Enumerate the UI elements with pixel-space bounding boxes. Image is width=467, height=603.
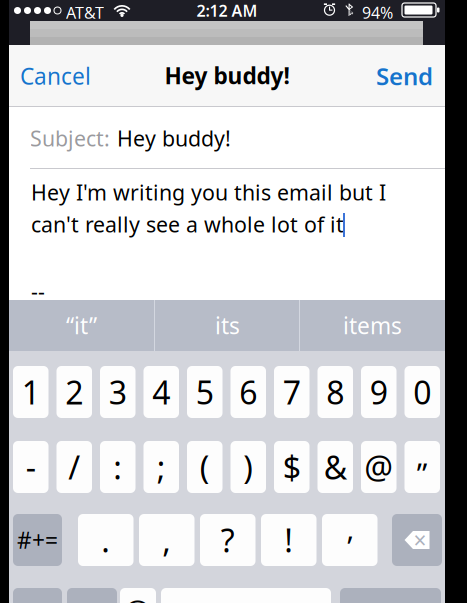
button[interactable]: Delete [392,514,442,566]
staticText: ? [221,519,235,561]
staticText: ( [200,446,210,488]
staticText: 5 [196,371,214,413]
button[interactable]: ( [187,441,222,493]
staticText: Send [376,60,433,92]
staticText: 9 [370,371,388,413]
button[interactable]: & [317,441,353,493]
staticText: 8 [326,371,344,413]
button[interactable]: . [78,514,133,566]
button[interactable]: $ [274,441,309,493]
button[interactable]: ; [143,441,179,493]
staticText: its [215,310,240,340]
button[interactable]: ” [404,441,440,493]
staticText: : [113,446,122,488]
button[interactable]: its [155,300,300,351]
staticText: 2 [65,371,83,413]
button[interactable]: 0 [404,366,440,418]
staticText: ’ [347,526,352,565]
staticText: 2:12 AM [196,0,257,21]
staticText: - [26,446,36,488]
button[interactable]: / [56,441,92,493]
button[interactable]: ’ [322,514,377,566]
button[interactable]: 1 [13,366,48,418]
button[interactable]: 8 [317,366,353,418]
button[interactable]: “it” [9,300,154,351]
staticText: 3 [109,371,127,413]
button[interactable]: ☺ [120,588,156,603]
button[interactable]: 123 [13,588,62,603]
staticText: . [101,519,110,561]
button[interactable]: 5 [187,366,222,418]
button[interactable]: ) [230,441,266,493]
button[interactable]: 9 [361,366,396,418]
button[interactable]: items [300,300,445,351]
button[interactable]: Cancel [20,47,116,105]
button[interactable]: Next keyboard [67,588,117,603]
button[interactable]: 6 [230,366,266,418]
staticText: 94% [362,2,393,23]
staticText: ) [243,446,253,488]
button[interactable]: @ [361,441,396,493]
staticText: × [413,525,426,555]
button[interactable]: 4 [143,366,179,418]
staticText: , [162,519,171,561]
staticText: @ [364,446,393,488]
button[interactable]: #+= [13,514,62,566]
staticText: 7 [283,371,301,413]
button[interactable]: , [139,514,194,566]
staticText: #+= [17,525,58,555]
staticText: / [68,446,80,488]
staticText: 4 [152,371,170,413]
button[interactable]: - [13,441,48,493]
staticText: Subject: [30,124,110,152]
button[interactable]: 7 [274,366,309,418]
staticText: ” [417,453,428,492]
staticText: Hey buddy! [164,60,289,90]
staticText: ! [284,519,293,561]
staticText: 1 [22,371,40,413]
staticText: ☺ [122,597,153,603]
staticText: & [324,446,347,488]
button[interactable]: 2 [56,366,92,418]
staticText: can't really see a whole lot of it [31,210,344,238]
staticText: 6 [239,371,257,413]
staticText: items [343,310,402,340]
staticText: 0 [413,371,431,413]
button[interactable]: ! [261,514,316,566]
button[interactable]: Send [361,47,433,105]
staticText: Hey buddy! [117,124,231,152]
staticText: ; [157,446,166,488]
staticText: -- [31,277,45,305]
staticText: Cancel [20,61,91,91]
button[interactable]: 3 [100,366,135,418]
button[interactable]: : [100,441,135,493]
staticText: Hey I'm writing you this email but I [31,178,386,206]
staticText: $ [283,446,301,488]
staticText: AT&T [66,2,104,23]
button[interactable]: ? [200,514,255,566]
staticText: “it” [66,310,97,340]
